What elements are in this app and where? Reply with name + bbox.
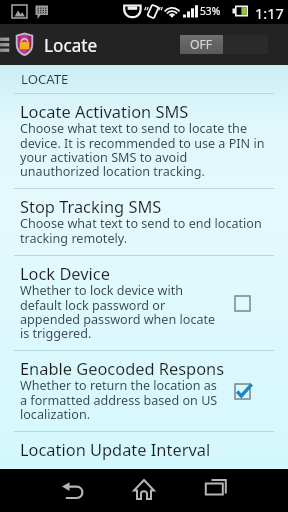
button[interactable]: Locate switch, off bbox=[180, 30, 268, 59]
button[interactable]: Locate Activation SMS bbox=[0, 94, 288, 188]
button[interactable]: Navigate up bbox=[0, 24, 13, 65]
staticText: 1:17 bbox=[255, 3, 284, 23]
staticText: Lock Device bbox=[20, 262, 270, 284]
staticText: Enable Geocoded Respons bbox=[20, 357, 270, 379]
button[interactable]: Checked option bbox=[229, 378, 255, 404]
staticText: 53% bbox=[200, 4, 221, 18]
staticText: Choose how often to have location bbox=[20, 458, 266, 461]
staticText: Choose what text to send to end location… bbox=[20, 215, 266, 247]
button[interactable]: Enable Geocoded Respons bbox=[0, 351, 288, 431]
staticText: Whether to return the location as a form… bbox=[20, 377, 220, 423]
button[interactable]: Back bbox=[48, 469, 98, 512]
button[interactable]: Lock Device bbox=[0, 256, 288, 350]
button[interactable]: Unchecked option bbox=[229, 290, 255, 316]
button[interactable]: Home bbox=[119, 469, 169, 512]
button[interactable]: Recent apps bbox=[190, 469, 240, 512]
staticText: LOCATE bbox=[21, 70, 69, 88]
staticText: Whether to lock device with default lock… bbox=[20, 282, 220, 342]
staticText: OFF bbox=[190, 36, 213, 53]
staticText: Choose what text to send to locate the d… bbox=[20, 120, 266, 180]
button[interactable]: Location Update Interval bbox=[0, 432, 288, 469]
staticText: Stop Tracking SMS bbox=[20, 195, 270, 217]
staticText: Locate Activation SMS bbox=[20, 100, 270, 122]
staticText: Locate bbox=[44, 34, 98, 57]
button[interactable]: Stop Tracking SMS bbox=[0, 189, 288, 255]
staticText: Location Update Interval bbox=[20, 438, 270, 460]
